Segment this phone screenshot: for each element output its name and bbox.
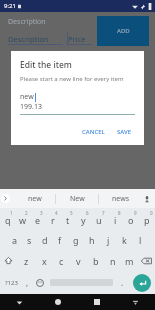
staticText: s [27,234,32,246]
staticText: Description [8,17,46,27]
staticText: d [42,234,48,246]
staticText: e [35,214,41,226]
button[interactable]: d [37,229,52,250]
button[interactable]: a [7,229,22,250]
button[interactable]: t [60,208,75,229]
staticText: ADD [117,27,130,35]
button[interactable]: ?123 [0,271,22,294]
button[interactable]: Hide keyboard [116,294,155,310]
button[interactable]: Voice input [142,194,152,204]
button[interactable]: h [84,229,100,250]
staticText: Please start a new line for every item [20,75,124,83]
button[interactable]: n [104,250,121,271]
staticText: v [76,255,81,267]
staticText: 199.13 [20,102,42,112]
button[interactable]: g [68,229,84,250]
staticText: 1 [10,210,13,216]
staticText: a [12,234,18,246]
button[interactable]: Home [38,294,77,310]
staticText: o [128,214,134,226]
staticText: , [26,277,29,288]
staticText: 9:21 [4,2,16,10]
staticText: 5 [70,210,73,216]
staticText: y [81,214,86,226]
button[interactable]: Backspace [138,250,155,271]
button[interactable]: k [116,229,132,250]
button[interactable]: New [56,189,98,208]
staticText: news [112,194,129,204]
staticText: z [24,255,29,267]
button[interactable]: m [121,250,138,271]
button[interactable]: o [123,208,139,229]
staticText: j [107,234,110,246]
staticText: new [20,92,34,102]
staticText: ?123 [5,279,18,287]
staticText: 4 [55,210,58,216]
staticText: Price [68,34,86,44]
button[interactable]: , [22,271,33,294]
staticText: q [5,214,11,226]
staticText: g [73,234,79,246]
staticText: k [122,234,127,246]
staticText: u [96,214,102,226]
button[interactable]: b [87,250,104,271]
staticText: 7 [102,210,105,216]
button[interactable]: SAVE [113,125,136,139]
button[interactable]: s [22,229,37,250]
staticText: 8 [118,210,121,216]
staticText: CANCEL [82,128,105,136]
staticText: h [89,234,95,246]
button[interactable]: e [30,208,45,229]
staticText: m [125,255,134,267]
button[interactable]: w [15,208,30,229]
staticText: t [66,214,70,226]
staticText: 0 [150,210,153,216]
button[interactable]: . [116,271,129,294]
staticText: New [70,194,85,204]
button[interactable]: new [14,189,55,208]
button[interactable]: c [53,250,70,271]
button[interactable]: v [70,250,87,271]
staticText: r [51,214,55,226]
button[interactable]: l [132,229,148,250]
button[interactable]: q [0,208,15,229]
staticText: w [19,214,27,226]
button[interactable]: y [75,208,91,229]
button[interactable]: Expand suggestions [1,194,10,203]
button[interactable]: z [17,250,35,271]
button[interactable]: news [99,189,141,208]
button[interactable]: p [139,208,155,229]
staticText: x [42,255,47,267]
button[interactable]: f [52,229,68,250]
staticText: . [121,277,124,288]
staticText: p [144,214,150,226]
button[interactable]: r [45,208,60,229]
staticText: i [114,214,117,226]
button[interactable]: Emoji [33,271,47,294]
button[interactable]: ADD [97,16,149,46]
button[interactable]: Recents [77,294,116,310]
staticText: SAVE [117,128,132,136]
button[interactable]: u [91,208,107,229]
button[interactable]: CANCEL [78,125,109,139]
button[interactable]: x [35,250,53,271]
staticText: l [139,234,142,246]
button[interactable]: j [100,229,116,250]
staticText: 2 [25,210,28,216]
staticText: b [93,255,99,267]
staticText: new [28,194,42,204]
button[interactable]: i [107,208,123,229]
staticText: Edit the item [20,59,72,71]
staticText: 3 [40,210,43,216]
button[interactable]: Shift [0,250,17,271]
staticText: n [110,255,116,267]
button[interactable]: Enter [133,274,151,292]
staticText: f [58,234,62,246]
button[interactable]: Back [0,294,38,310]
staticText: c [59,255,64,267]
staticText: 6 [86,210,89,216]
staticText: 9 [134,210,137,216]
staticText: Description [8,34,49,44]
